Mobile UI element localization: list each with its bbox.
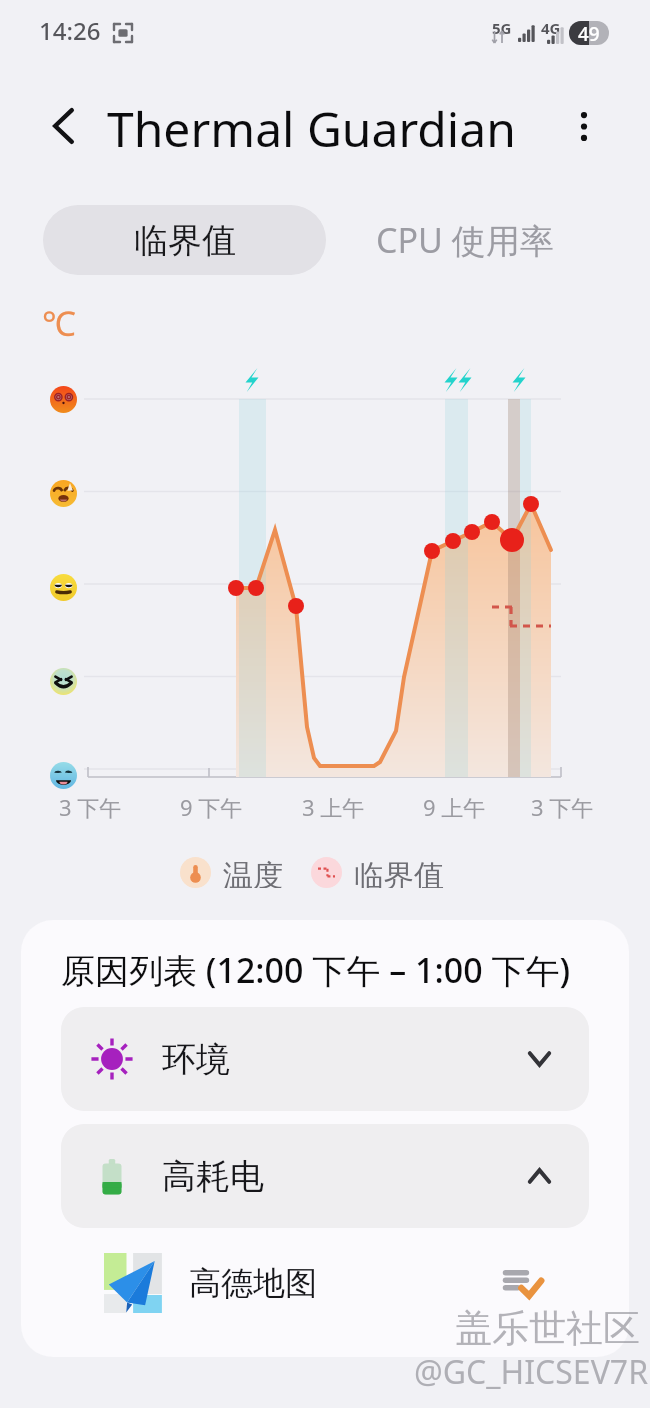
staticText: Thermal Guardian [107, 96, 516, 161]
button[interactable]: More options [558, 100, 610, 152]
staticText: 原因列表 (12:00 下午 – 1:00 下午) [61, 947, 571, 993]
staticText: 9 下午 [180, 792, 243, 822]
button[interactable]: 环境 [61, 1007, 589, 1111]
staticText: 高耗电 [162, 1155, 264, 1198]
button[interactable]: CPU 使用率 [340, 205, 590, 275]
staticText: @GC_HICSEV7R [414, 1350, 649, 1394]
staticText: ℃ [42, 300, 76, 346]
button[interactable]: 临界值 [43, 205, 326, 275]
staticText: 3 下午 [531, 792, 594, 822]
staticText: 5G [492, 18, 512, 38]
staticText: 3 上午 [302, 792, 365, 822]
staticText: 临界值 [354, 857, 444, 888]
staticText: 临界值 [134, 219, 236, 262]
button[interactable]: 高德地图 [61, 1238, 589, 1328]
button[interactable]: 高耗电 [61, 1124, 589, 1228]
staticText: 温度 [223, 857, 283, 888]
staticText: 环境 [162, 1038, 230, 1081]
staticText: 49 [578, 21, 600, 45]
staticText: 盖乐世社区 [455, 1305, 640, 1352]
staticText: 高德地图 [189, 1263, 317, 1303]
staticText: CPU 使用率 [376, 217, 554, 263]
staticText: 3 下午 [59, 792, 122, 822]
staticText: 9 上午 [423, 792, 486, 822]
staticText: 4G [541, 18, 561, 38]
button[interactable]: Back [37, 100, 89, 152]
staticText: 14:26 [39, 14, 101, 47]
